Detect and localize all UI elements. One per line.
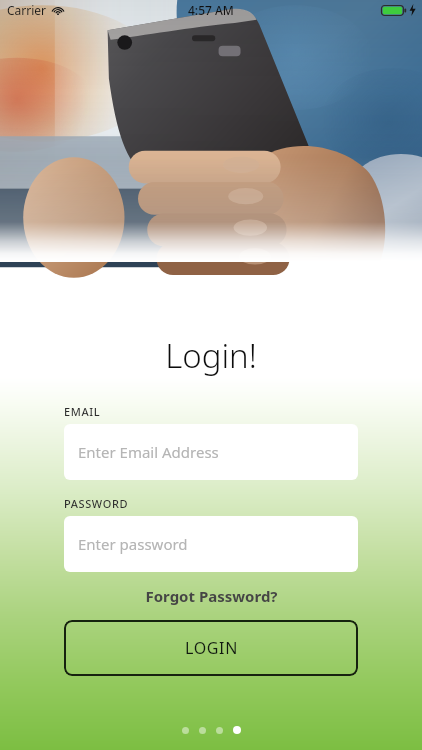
staticText: Login! <box>165 333 257 378</box>
staticText: Enter password <box>78 534 188 554</box>
staticText: EMAIL <box>64 404 101 419</box>
button[interactable]: LOGIN <box>64 620 358 676</box>
staticText: 4:57 AM <box>188 2 234 18</box>
button[interactable]: Page 2 <box>199 727 206 734</box>
button[interactable]: Page 3 <box>216 727 223 734</box>
staticText: Enter Email Address <box>78 442 219 462</box>
button[interactable]: Enter password <box>64 516 358 572</box>
button[interactable]: Enter Email Address <box>64 424 358 480</box>
staticText: Carrier <box>7 2 47 18</box>
button[interactable]: Page 4 <box>233 726 241 734</box>
staticText: Forgot Password? <box>145 586 278 606</box>
button[interactable]: Page 1 <box>182 727 189 734</box>
staticText: LOGIN <box>185 637 238 659</box>
button[interactable]: Forgot Password? <box>64 583 358 609</box>
staticText: PASSWORD <box>64 496 129 511</box>
